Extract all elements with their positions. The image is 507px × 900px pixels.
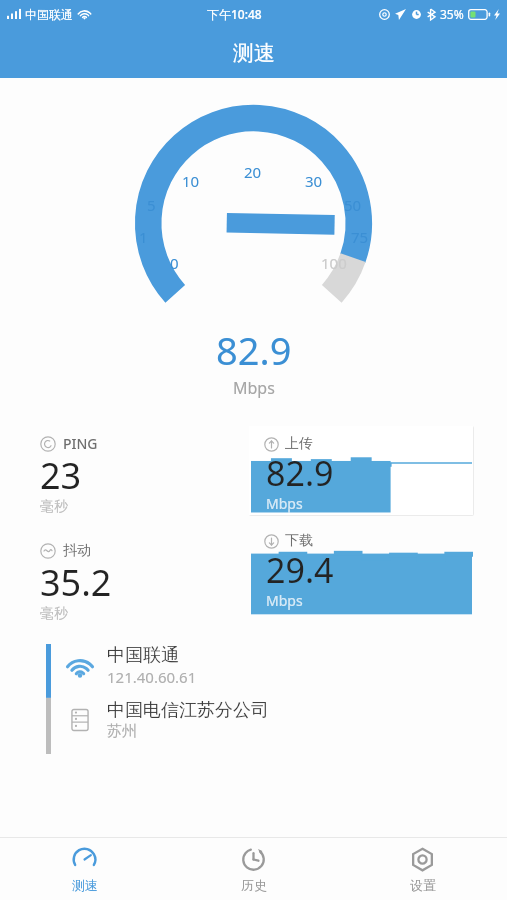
staticText: 毫秒 — [40, 498, 68, 516]
staticText: 121.40.60.61 — [107, 667, 197, 687]
staticText: 50 — [344, 195, 362, 215]
staticText: 82.9 — [266, 450, 334, 496]
button[interactable]: 测速 — [0, 838, 169, 900]
staticText: PING — [63, 434, 98, 453]
button[interactable]: 抖动 — [40, 542, 112, 627]
staticText: 中国联通 — [25, 7, 73, 22]
staticText: 23 — [40, 451, 82, 500]
staticText: 下载 — [285, 532, 313, 550]
staticText: 100 — [321, 253, 347, 273]
staticText: 抖动 — [63, 542, 91, 560]
staticText: 苏州 — [107, 722, 137, 741]
staticText: 中国电信江苏分公司 — [107, 699, 269, 722]
staticText: 5 — [147, 195, 156, 215]
staticText: 中国联通 — [107, 644, 179, 667]
staticText: Mbps — [266, 591, 303, 610]
staticText: 20 — [244, 162, 262, 182]
staticText: 35% — [440, 6, 464, 22]
button[interactable]: 下载 — [249, 526, 476, 618]
staticText: 1 — [139, 227, 148, 247]
button[interactable]: 中国电信江苏分公司 — [67, 699, 269, 741]
button[interactable]: PING — [40, 434, 98, 520]
staticText: 上传 — [285, 435, 313, 453]
staticText: 75 — [351, 227, 369, 247]
staticText: Mbps — [233, 377, 275, 399]
staticText: 下午10:48 — [207, 6, 262, 22]
staticText: 测速 — [72, 877, 98, 893]
staticText: 35.2 — [40, 558, 112, 607]
staticText: 历史 — [241, 877, 267, 893]
staticText: 设置 — [410, 877, 436, 893]
staticText: 30 — [305, 171, 323, 191]
button[interactable]: 历史 — [169, 838, 338, 900]
button[interactable]: 中国联通 — [67, 644, 197, 687]
button[interactable]: 上传 — [249, 426, 476, 518]
staticText: 29.4 — [266, 547, 334, 593]
staticText: 0 — [170, 253, 179, 273]
button[interactable]: 设置 — [338, 838, 507, 900]
staticText: 毫秒 — [40, 605, 68, 623]
staticText: 测速 — [233, 40, 275, 66]
staticText: 10 — [182, 171, 200, 191]
staticText: Mbps — [266, 494, 303, 513]
staticText: 82.9 — [216, 324, 292, 376]
